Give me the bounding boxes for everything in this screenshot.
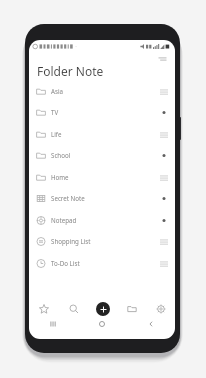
- button[interactable]: Folders: [117, 298, 146, 320]
- staticText: TV: [51, 108, 59, 116]
- button[interactable]: Back: [144, 317, 158, 331]
- button[interactable]: Sort: [156, 54, 169, 64]
- button[interactable]: Favorites: [29, 298, 59, 320]
- button[interactable]: To-Do List: [29, 252, 175, 274]
- staticText: To-Do List: [51, 259, 80, 267]
- button[interactable]: Life: [29, 123, 175, 145]
- button[interactable]: School: [29, 144, 175, 166]
- button[interactable]: Search: [59, 298, 88, 320]
- button[interactable]: Add note: [96, 302, 110, 316]
- staticText: Life: [51, 130, 62, 138]
- staticText: Notepad: [51, 216, 77, 224]
- button[interactable]: Asia: [29, 80, 175, 102]
- button[interactable]: Shopping List: [29, 230, 175, 252]
- staticText: Secret Note: [51, 194, 85, 202]
- button[interactable]: Notepad: [29, 209, 175, 231]
- button[interactable]: Home: [29, 166, 175, 188]
- staticText: Asia: [51, 87, 63, 95]
- staticText: Home: [51, 173, 69, 181]
- button[interactable]: Secret Note: [29, 187, 175, 209]
- button[interactable]: Home: [95, 317, 109, 331]
- button[interactable]: TV: [29, 101, 175, 123]
- staticText: School: [51, 151, 71, 159]
- button[interactable]: Recents: [46, 317, 60, 331]
- staticText: Shopping List: [51, 237, 91, 245]
- button[interactable]: Settings: [146, 298, 175, 320]
- staticText: Folder Note: [37, 63, 104, 79]
